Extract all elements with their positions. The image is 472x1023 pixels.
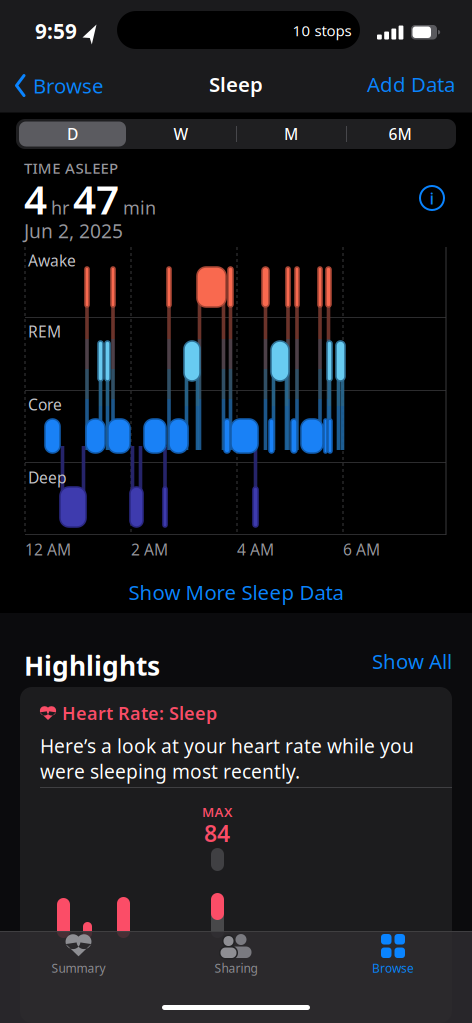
staticText: Browse [372,960,414,976]
staticText: Sleep [209,70,263,98]
staticText: Here’s a look at your heart rate while y… [40,733,414,784]
button[interactable]: W [128,120,234,148]
staticText: i [429,187,434,209]
staticText: min [123,196,156,220]
button[interactable]: About Time Asleep [420,186,444,210]
staticText: 6 AM [343,539,380,560]
staticText: 10 stops [292,20,351,40]
staticText: 4 [24,172,47,226]
staticText: Core [28,394,62,415]
button[interactable]: Show All [372,647,452,675]
staticText: Awake [28,250,76,271]
staticText: Sharing [214,960,257,976]
staticText: Summary [51,960,105,976]
staticText: M [284,124,298,144]
button[interactable]: Heart Rate: Sleep [20,687,452,1023]
button[interactable]: Browse [328,927,458,983]
staticText: Browse [33,72,104,99]
staticText: hr [51,196,69,220]
staticText: 4 AM [237,539,274,560]
staticText: Heart Rate: Sleep [62,701,217,725]
staticText: 2 AM [131,539,168,560]
staticText: W [173,124,188,144]
staticText: TIME ASLEEP [24,158,118,178]
staticText: 9:59 [35,17,77,45]
staticText: 84 [204,818,230,848]
staticText: Highlights [24,648,160,683]
button[interactable]: Show More Sleep Data [128,578,343,606]
button[interactable]: 6M [347,120,453,148]
staticText: 6M [388,124,411,144]
staticText: REM [28,321,61,342]
button[interactable]: M [238,120,344,148]
staticText: Show All [372,647,452,675]
button[interactable]: Sharing [171,927,301,983]
staticText: Show More Sleep Data [128,578,343,606]
staticText: 47 [73,172,119,226]
staticText: 12 AM [25,539,71,560]
button[interactable]: D [19,120,125,148]
staticText: Deep [28,467,67,488]
button[interactable]: Summary [13,927,143,983]
button[interactable]: Add Data [367,70,455,98]
staticText: Add Data [367,70,455,98]
button[interactable]: Browse [14,72,104,99]
staticText: Jun 2, 2025 [24,218,123,243]
staticText: MAX [202,803,232,821]
staticText: D [67,124,78,144]
